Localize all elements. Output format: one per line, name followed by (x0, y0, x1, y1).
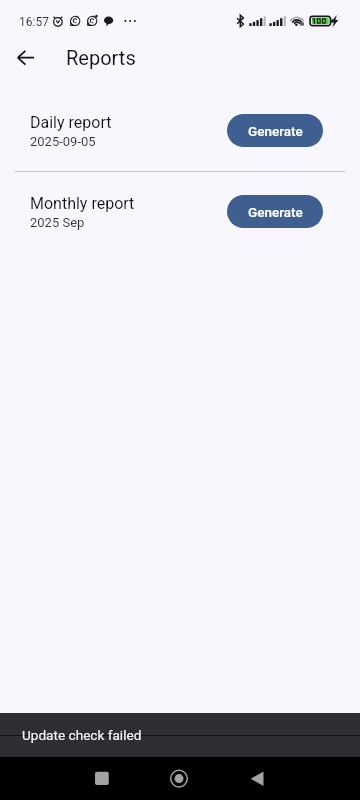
staticText: 16:57 (19, 15, 49, 29)
staticText: Daily report (30, 113, 112, 132)
button[interactable]: Monthly report (0, 171, 360, 252)
button[interactable]: Recent apps (80, 757, 124, 800)
staticText: Generate (248, 123, 303, 139)
button[interactable]: Back (8, 39, 46, 77)
staticText: 2025 Sep (30, 215, 85, 230)
staticText: Update check failed (22, 727, 142, 743)
button[interactable]: Generate (227, 114, 323, 147)
button[interactable]: Generate (227, 195, 323, 228)
staticText: Generate (248, 204, 303, 220)
staticText: Reports (66, 46, 136, 69)
staticText: Monthly report (30, 194, 135, 213)
button[interactable]: Home (157, 757, 201, 800)
button[interactable]: Back (235, 757, 279, 800)
staticText: 2025-09-05 (30, 134, 96, 149)
button[interactable]: Daily report (0, 90, 360, 171)
